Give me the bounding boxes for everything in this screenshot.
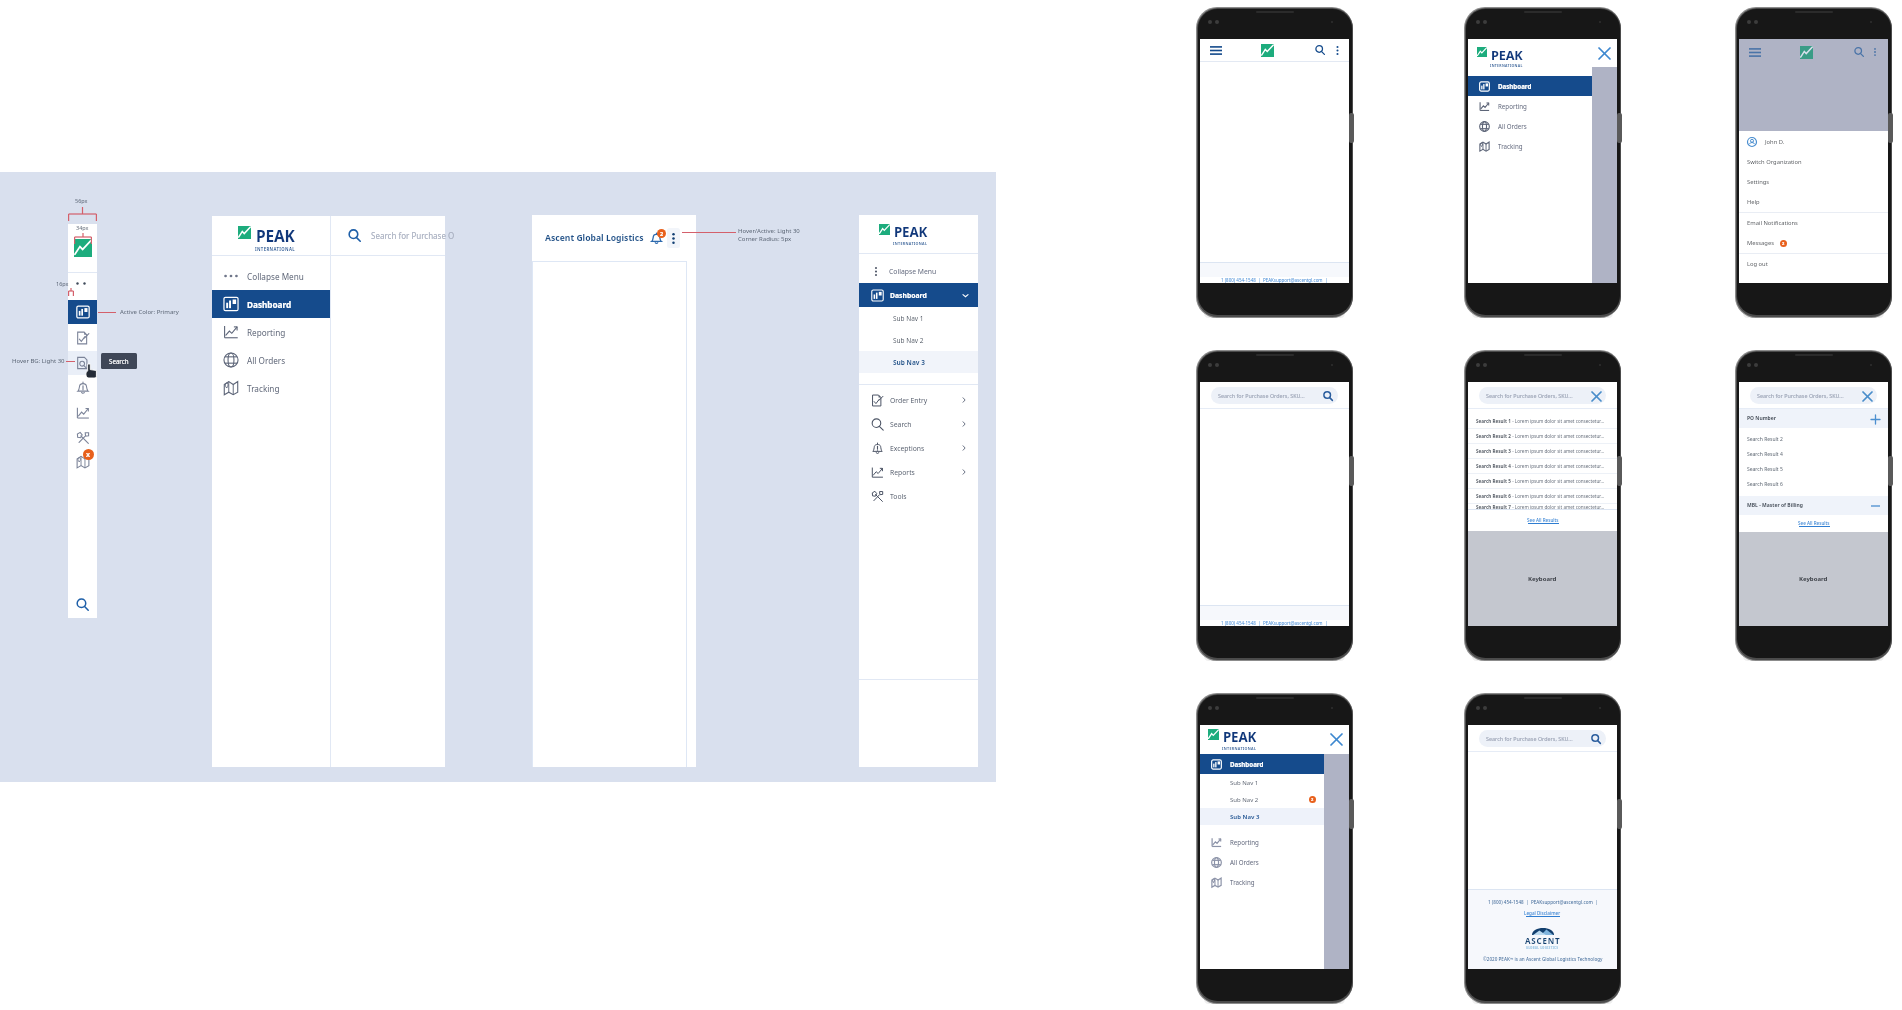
button[interactable]: Reports <box>68 401 97 425</box>
button[interactable]: Search <box>68 592 97 616</box>
button[interactable]: More options <box>667 228 680 248</box>
button[interactable]: Search Result 5 <box>1739 462 1888 477</box>
button[interactable]: Search Result 5 <box>1468 474 1617 488</box>
button[interactable]: Search for Purchase Orders, SKU... <box>1479 730 1606 747</box>
button[interactable]: Exceptions <box>859 436 978 460</box>
button[interactable]: Menu <box>1209 43 1223 57</box>
staticText: Collapse Menu <box>247 271 304 282</box>
button[interactable]: Order Entry <box>68 326 97 350</box>
button[interactable]: Help <box>1739 192 1888 212</box>
staticText: INTERNATIONAL <box>1490 63 1523 68</box>
button[interactable]: Search <box>859 412 978 436</box>
staticText: Reporting <box>1230 838 1259 846</box>
button[interactable]: Legal Disclaimer <box>1524 910 1561 917</box>
button[interactable]: Search Result 4 <box>1468 459 1617 473</box>
staticText: Sub Nav 1 <box>1230 779 1259 787</box>
button[interactable]: Search <box>1589 732 1603 746</box>
staticText: 1 (800) 454-1548 | PEAKsupport@ascentgl.… <box>1488 899 1598 905</box>
button[interactable]: Tracking <box>212 374 330 402</box>
button[interactable]: Switch Organization <box>1739 152 1888 172</box>
button[interactable]: Notifications <box>648 230 665 247</box>
button[interactable]: Search Result 6 <box>1739 477 1888 492</box>
button[interactable]: Exceptions <box>68 376 97 400</box>
staticText: Keyboard <box>1799 575 1828 583</box>
button[interactable]: Search Result 2 <box>1739 432 1888 447</box>
button[interactable]: Reporting <box>212 318 330 346</box>
button[interactable]: Search Result 6 <box>1468 489 1617 503</box>
staticText: INTERNATIONAL <box>1222 746 1257 751</box>
button[interactable]: Settings <box>1739 172 1888 192</box>
staticText: Help <box>1747 198 1760 206</box>
staticText: Search for Purchase Orders, SKU... <box>1757 392 1844 399</box>
button[interactable]: Close <box>1324 725 1349 754</box>
button[interactable]: All Orders <box>1200 852 1324 872</box>
button[interactable]: John D. <box>1739 131 1888 152</box>
button[interactable]: Dashboard <box>859 283 978 307</box>
button[interactable]: Tracking <box>1468 136 1592 156</box>
button[interactable]: More options <box>1870 47 1880 57</box>
button[interactable]: Log out <box>1739 254 1888 274</box>
button[interactable]: Tracking <box>1200 872 1324 892</box>
button[interactable]: Search <box>68 351 97 375</box>
button[interactable]: Search Result 1 <box>1468 414 1617 428</box>
button[interactable]: Search <box>1321 389 1335 403</box>
staticText: 1 (800) 454-1548 | PEAKsupport@ascentgl.… <box>1221 277 1328 283</box>
button[interactable]: Sub Nav 1 <box>1200 774 1324 791</box>
staticText: 34px <box>76 224 89 231</box>
other: Expand <box>1869 413 1881 425</box>
staticText: Search for Purchase Orders, SKU... <box>1486 392 1573 399</box>
button[interactable]: Close search <box>1589 389 1603 403</box>
button[interactable]: PO Number <box>1739 409 1888 428</box>
button[interactable]: MBL - Master of Billing <box>1739 496 1888 515</box>
button[interactable]: Search Result 7 <box>1468 504 1617 509</box>
button[interactable]: Sub Nav 2 <box>1200 791 1324 808</box>
button[interactable]: Tracking <box>68 450 97 474</box>
button[interactable]: Sub Nav 3 <box>859 351 978 373</box>
staticText: Search Result 1 <box>1476 418 1511 424</box>
button[interactable]: Order Entry <box>859 388 978 412</box>
button[interactable]: Search Result 4 <box>1739 447 1888 462</box>
button[interactable]: Menu <box>1748 45 1762 59</box>
button[interactable]: See All Results <box>1468 510 1617 531</box>
button[interactable]: Sub Nav 1 <box>859 307 978 329</box>
staticText: 2 <box>1782 241 1785 246</box>
staticText: 1 (800) 454-1548 | PEAKsupport@ascentgl.… <box>1221 620 1328 626</box>
button[interactable]: Sub Nav 2 <box>859 329 978 351</box>
staticText: All Orders <box>247 355 286 366</box>
button[interactable]: Email Notifications <box>1739 213 1888 233</box>
button[interactable]: Sub Nav 3 <box>1200 808 1324 825</box>
staticText: Search Result 3 <box>1476 448 1511 454</box>
button[interactable]: Reporting <box>1468 96 1592 116</box>
staticText: Search Result 2 <box>1476 433 1511 439</box>
button[interactable]: Search <box>1852 45 1866 59</box>
button[interactable]: Tools <box>859 484 978 508</box>
button[interactable]: Reporting <box>1200 832 1324 852</box>
button[interactable]: Collapse Menu <box>212 262 330 290</box>
button[interactable]: Search for Purchase Orders, SKU... <box>1750 387 1877 404</box>
staticText: Search <box>890 420 912 429</box>
button[interactable]: Dashboard <box>1200 754 1324 774</box>
staticText: MBL - Master of Billing <box>1747 502 1804 509</box>
staticText: Switch Organization <box>1747 158 1802 166</box>
button[interactable]: Search <box>1313 43 1327 57</box>
button[interactable]: Reports <box>859 460 978 484</box>
button[interactable]: Search for Purchase Orders, SKU... <box>1479 387 1606 404</box>
button[interactable]: All Orders <box>1468 116 1592 136</box>
button[interactable]: See All Results <box>1739 515 1888 532</box>
button[interactable]: More options <box>1332 45 1342 55</box>
button[interactable]: Collapse Menu <box>859 260 978 283</box>
button[interactable]: Search Result 2 <box>1468 429 1617 443</box>
button[interactable]: Dashboard <box>1468 76 1592 96</box>
staticText: - Lorem ipsum dolor sit amet consectetur… <box>1511 418 1605 424</box>
button[interactable]: Search for Purchase Orders, SKU... <box>1211 387 1338 404</box>
button[interactable]: All Orders <box>212 346 330 374</box>
button[interactable]: Messages <box>1739 233 1888 253</box>
button[interactable]: Close <box>1592 39 1617 67</box>
button[interactable]: Search Result 3 <box>1468 444 1617 458</box>
staticText: Active Color: Primary <box>120 308 179 316</box>
button[interactable]: Dashboard <box>68 300 97 324</box>
button[interactable]: Tools <box>68 426 97 450</box>
button[interactable]: Close search <box>1860 389 1874 403</box>
button[interactable]: Dashboard <box>212 290 330 318</box>
staticText: Corner Radius: 5px <box>738 235 792 243</box>
